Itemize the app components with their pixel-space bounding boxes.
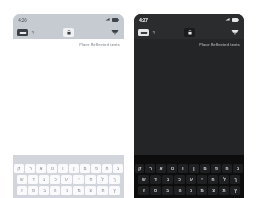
button[interactable]: נ [186, 186, 196, 195]
button[interactable]: ץ [109, 186, 120, 195]
button[interactable]: ב [162, 186, 173, 195]
button[interactable]: כ [50, 175, 60, 184]
button[interactable]: ל [97, 175, 108, 184]
button[interactable]: ר [145, 164, 155, 173]
staticText: ת [222, 188, 226, 193]
button[interactable]: ת [97, 186, 108, 195]
button[interactable]: כ [174, 175, 185, 184]
staticText: פ [215, 166, 218, 171]
button[interactable]: פ [91, 164, 101, 173]
button[interactable]: נ [61, 186, 72, 195]
staticText: ץ [234, 188, 237, 193]
button[interactable]: ע [186, 175, 196, 184]
button[interactable]: י [73, 175, 84, 184]
button[interactable]: ט [47, 164, 57, 173]
button[interactable]: י [197, 175, 207, 184]
button[interactable]: ש [17, 175, 27, 184]
staticText: ז [21, 188, 23, 193]
staticText: ן [73, 166, 75, 171]
button[interactable]: ח [208, 175, 218, 184]
staticText: ג [43, 177, 45, 182]
button[interactable]: ם [80, 164, 90, 173]
button[interactable]: Menu [151, 29, 157, 35]
button[interactable]: ר [25, 164, 35, 173]
button[interactable]: פ [211, 164, 221, 173]
button[interactable]: Keyboard layout [17, 29, 28, 36]
staticText: ל [223, 177, 226, 182]
staticText: 4:26 [18, 17, 27, 23]
button[interactable]: מ [73, 186, 84, 195]
button[interactable]: ך [230, 175, 240, 184]
button[interactable]: ק [135, 164, 144, 173]
staticText: ם [83, 166, 87, 171]
button[interactable]: ד [28, 175, 38, 184]
staticText: ש [142, 177, 146, 182]
staticText: ת [101, 188, 105, 193]
button[interactable]: ע [61, 175, 72, 184]
staticText: כ [178, 177, 181, 182]
button[interactable]: ח [222, 164, 232, 173]
staticText: ר [149, 166, 152, 171]
staticText: ו [182, 166, 184, 171]
button[interactable]: מ [197, 186, 207, 195]
button[interactable]: ו [58, 164, 68, 173]
staticText: ד [32, 177, 35, 182]
button[interactable]: ס [28, 186, 38, 195]
staticText: צ [89, 188, 92, 193]
button[interactable]: ך [109, 175, 120, 184]
button[interactable]: צ [85, 186, 96, 195]
button[interactable]: ז [138, 186, 149, 195]
staticText: ל [101, 177, 104, 182]
button[interactable]: Settings [110, 28, 120, 36]
staticText: ט [51, 166, 54, 171]
button[interactable]: ת [219, 186, 229, 195]
staticText: ג [237, 166, 239, 171]
staticText: ב [166, 188, 169, 193]
button[interactable]: ט [167, 164, 177, 173]
staticText: ו [62, 166, 64, 171]
staticText: ט [171, 166, 174, 171]
button[interactable]: ס [150, 186, 161, 195]
staticText: מ [200, 188, 204, 193]
button[interactable]: Keyboard layout [138, 29, 149, 36]
staticText: ע [190, 177, 193, 182]
staticText: ק [138, 166, 142, 171]
staticText: Place Reflected texts [79, 42, 120, 48]
button[interactable]: ם [200, 164, 210, 173]
button[interactable]: ק [14, 164, 24, 173]
button[interactable]: ל [219, 175, 229, 184]
staticText: ץ [113, 188, 116, 193]
button[interactable]: ז [17, 186, 27, 195]
button[interactable]: ד [150, 175, 161, 184]
button[interactable]: ג [39, 175, 49, 184]
button[interactable]: ץ [230, 186, 240, 195]
button[interactable]: ה [50, 186, 60, 195]
staticText: ד [154, 177, 157, 182]
staticText: כ [54, 177, 57, 182]
button[interactable]: א [36, 164, 46, 173]
staticText: ב [43, 188, 46, 193]
button[interactable]: צ [208, 186, 218, 195]
button[interactable]: ג [162, 175, 173, 184]
button[interactable]: ח [102, 164, 112, 173]
button[interactable]: א [156, 164, 166, 173]
staticText: ה [178, 188, 182, 193]
button[interactable]: ה [174, 186, 185, 195]
button[interactable]: ו [178, 164, 188, 173]
button[interactable]: ג [233, 164, 243, 173]
button[interactable]: Settings [230, 28, 240, 36]
button[interactable]: Lock [63, 28, 74, 37]
staticText: 4:27 [139, 17, 148, 23]
button[interactable]: Lock [184, 28, 195, 37]
staticText: ק [17, 166, 21, 171]
button[interactable]: ב [39, 186, 49, 195]
button[interactable]: ן [69, 164, 79, 173]
staticText: ח [225, 166, 229, 171]
button[interactable]: Menu [30, 29, 36, 35]
button[interactable]: ש [138, 175, 149, 184]
button[interactable]: ג [113, 164, 123, 173]
button[interactable]: ן [189, 164, 199, 173]
button[interactable]: ח [85, 175, 96, 184]
